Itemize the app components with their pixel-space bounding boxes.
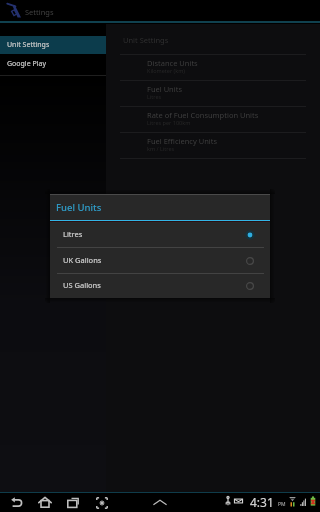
button[interactable]: Rate of Fuel Consumption Units [106, 107, 320, 133]
staticText: 4:31 [250, 494, 274, 510]
button[interactable]: Expand [148, 492, 172, 512]
staticText: UK Gallons [63, 255, 244, 265]
button[interactable]: Google Play [0, 54, 106, 75]
button[interactable]: Distance Units [106, 55, 320, 81]
staticText: km / Litres [147, 145, 175, 152]
button[interactable]: Fuel Units [106, 81, 320, 107]
button[interactable]: Back [5, 492, 29, 512]
button[interactable]: Home [33, 492, 57, 512]
button[interactable]: Fuel Efficiency Units [106, 133, 320, 159]
button[interactable]: Recent apps [61, 492, 85, 512]
staticText: Fuel Units [56, 201, 102, 214]
staticText: Unit Settings [123, 35, 169, 45]
button[interactable]: Litres [50, 222, 270, 247]
staticText: Unit Settings [7, 40, 50, 50]
button[interactable]: App icon [2, 1, 24, 21]
button[interactable]: US Gallons [50, 274, 270, 298]
staticText: Rate of Fuel Consumption Units [147, 110, 259, 120]
staticText: Distance Units [147, 58, 198, 68]
button[interactable]: UK Gallons [50, 248, 270, 273]
staticText: Settings [25, 7, 54, 17]
staticText: Google Play [7, 59, 46, 69]
staticText: PM [278, 501, 286, 508]
staticText: US Gallons [63, 280, 244, 290]
staticText: Litres [63, 229, 244, 239]
staticText: Fuel Units [147, 84, 182, 94]
button[interactable]: Screenshot [90, 492, 114, 512]
staticText: Litres per 100km [147, 119, 191, 126]
button[interactable]: Unit Settings [0, 36, 106, 54]
staticText: Fuel Efficiency Units [147, 136, 218, 146]
staticText: Kilometer (km) [147, 67, 185, 74]
staticText: Litres [147, 93, 162, 100]
